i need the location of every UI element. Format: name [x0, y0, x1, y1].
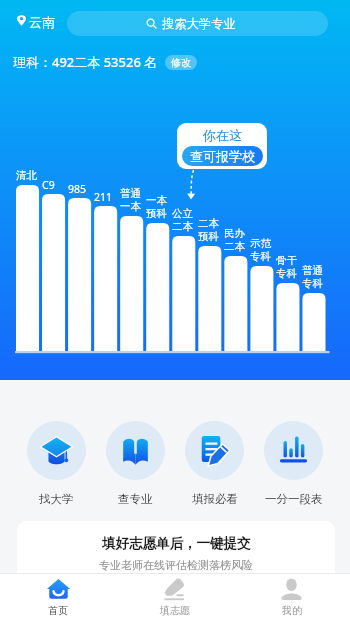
- button[interactable]: 找大学: [27, 421, 86, 506]
- button[interactable]: 我的: [233, 574, 350, 622]
- button[interactable]: 搜索大学专业: [67, 11, 328, 36]
- button[interactable]: 你在这: [177, 123, 267, 169]
- staticText: 填志愿: [160, 604, 190, 617]
- button[interactable]: 首页: [0, 574, 116, 622]
- staticText: 搜索大学专业: [162, 16, 236, 31]
- button[interactable]: 修改: [165, 55, 197, 70]
- staticText: 一本 预科: [146, 194, 167, 220]
- staticText: 二本 预科: [198, 217, 219, 243]
- staticText: 查可报学校: [190, 148, 255, 164]
- staticText: 骨干 专科: [276, 254, 297, 280]
- button[interactable]: 填志愿: [116, 574, 233, 622]
- staticText: 普通 专科: [302, 264, 323, 290]
- staticText: 211: [94, 190, 113, 204]
- staticText: 985: [68, 182, 87, 196]
- staticText: 修改: [171, 56, 191, 69]
- button[interactable]: 一分一段表: [264, 421, 323, 506]
- staticText: 专业老师在线评估检测落榜风险: [99, 558, 253, 572]
- button[interactable]: 填报必看: [185, 421, 244, 506]
- staticText: 我的: [282, 604, 302, 617]
- staticText: 一分一段表: [265, 492, 323, 506]
- staticText: 找大学: [39, 492, 74, 506]
- staticText: 理科：492二本 53526 名: [13, 53, 158, 71]
- staticText: 公立 二本: [172, 207, 193, 233]
- staticText: 填好志愿单后，一键提交: [102, 535, 251, 552]
- staticText: C9: [42, 178, 55, 192]
- button[interactable]: 查专业: [106, 421, 165, 506]
- staticText: 填报必看: [192, 492, 238, 506]
- staticText: 首页: [48, 604, 68, 617]
- staticText: 云南: [29, 14, 55, 30]
- staticText: 民办 二本: [224, 227, 245, 253]
- button[interactable]: 填好志愿单后，一键提交: [17, 521, 335, 573]
- staticText: 你在这: [203, 127, 242, 143]
- staticText: 查专业: [118, 492, 153, 506]
- button[interactable]: 云南: [16, 14, 55, 30]
- staticText: 普通 一本: [120, 187, 141, 213]
- staticText: 清北: [16, 169, 37, 182]
- staticText: 示范 专科: [250, 237, 271, 263]
